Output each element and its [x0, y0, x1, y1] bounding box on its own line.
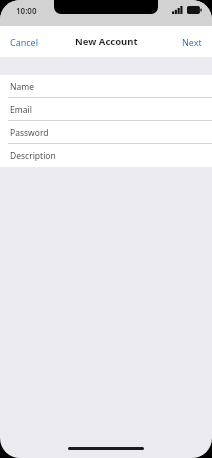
- button[interactable]: Password: [0, 121, 212, 144]
- button[interactable]: Name: [0, 75, 212, 98]
- button[interactable]: Cancel: [0, 30, 49, 54]
- staticText: Next: [182, 36, 202, 48]
- button[interactable]: Next: [172, 30, 212, 54]
- button[interactable]: Email: [0, 98, 212, 121]
- staticText: 10:00: [16, 5, 37, 16]
- staticText: Description: [10, 150, 56, 162]
- staticText: Name: [10, 81, 34, 93]
- staticText: Email: [10, 104, 32, 116]
- staticText: Cancel: [10, 36, 39, 48]
- button[interactable]: Description: [0, 144, 212, 167]
- staticText: New Account: [75, 35, 138, 48]
- staticText: Password: [10, 127, 49, 139]
